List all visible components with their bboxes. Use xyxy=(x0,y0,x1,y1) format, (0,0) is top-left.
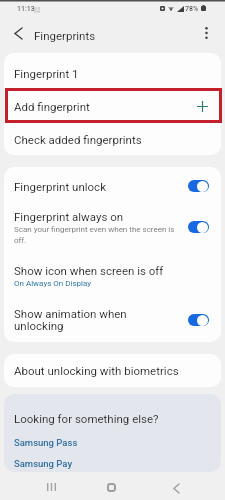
button[interactable]: Toggle xyxy=(188,314,209,326)
button[interactable]: Check added fingerprints xyxy=(4,123,221,155)
staticText: 78% xyxy=(185,5,199,13)
staticText: Looking for something else? xyxy=(14,412,159,425)
button[interactable]: Toggle xyxy=(188,221,209,233)
staticText: Fingerprint unlock xyxy=(14,180,188,193)
staticText: Add fingerprint xyxy=(14,100,90,113)
button[interactable]: Samsung Pay xyxy=(14,458,73,469)
staticText: Show animation when unlocking xyxy=(14,307,143,333)
staticText: Fingerprints xyxy=(34,29,96,42)
button[interactable]: Add fingerprint xyxy=(4,90,221,123)
staticText: On Always On Display xyxy=(14,279,92,288)
button[interactable]: Fingerprint 1 xyxy=(4,57,221,90)
staticText: Scan your fingerprint even when the scre… xyxy=(14,225,180,245)
button[interactable]: Show icon when screen is off xyxy=(4,253,221,299)
staticText: Fingerprint always on xyxy=(14,210,124,223)
button[interactable]: Toggle xyxy=(188,180,209,192)
staticText: About unlocking with biometrics xyxy=(14,364,179,377)
button[interactable]: Home xyxy=(95,473,127,500)
button[interactable]: Fingerprint always on xyxy=(4,201,221,253)
button[interactable]: Samsung Pass xyxy=(14,437,78,448)
button[interactable]: Fingerprint unlock xyxy=(4,171,221,201)
staticText: Show icon when screen is off xyxy=(14,264,164,277)
staticText: Check added fingerprints xyxy=(14,133,142,146)
button[interactable]: Recent apps xyxy=(35,473,67,500)
button[interactable]: More options xyxy=(196,23,216,43)
staticText: Fingerprint 1 xyxy=(14,67,79,80)
button[interactable]: About unlocking with biometrics xyxy=(4,354,221,387)
button[interactable]: Back xyxy=(160,474,192,500)
button[interactable]: Show animation when unlocking xyxy=(4,299,221,341)
button[interactable]: Navigate up xyxy=(9,24,28,43)
staticText: 11:13 xyxy=(17,5,35,13)
